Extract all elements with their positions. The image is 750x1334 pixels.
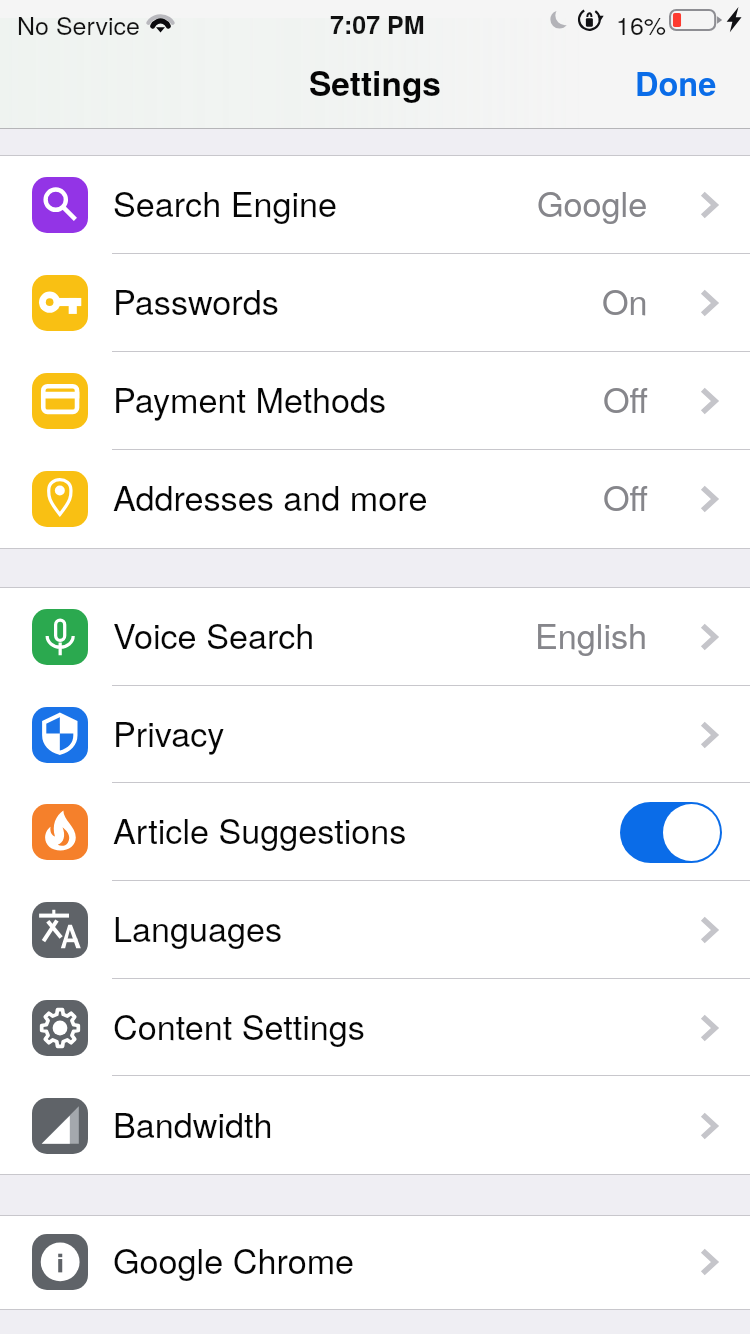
other: Passwords [700,289,718,317]
other: Search Engine [700,191,718,219]
other: Payment Methods [700,387,718,415]
staticText: Article Suggestions [113,805,407,854]
staticText: Languages [113,903,283,952]
other: Voice Search [700,623,718,651]
staticText: Voice Search [113,610,315,659]
other: Addresses and more [700,485,718,513]
staticText: 7:07 PM [330,6,425,42]
staticText: English [535,610,648,659]
other: Content Settings [700,1014,718,1042]
button[interactable]: Privacy [0,686,750,784]
staticText: Payment Methods [113,374,387,423]
staticText: 16% [616,6,667,42]
staticText: Passwords [113,276,279,325]
staticText: Off [603,472,648,521]
staticText: On [602,276,648,325]
button[interactable]: Voice Search [0,588,750,686]
staticText: Done [635,59,717,106]
button[interactable]: Bandwidth [0,1077,750,1175]
button[interactable]: Done [605,45,750,120]
other: Privacy [700,721,718,749]
button[interactable]: Addresses and more [0,450,750,548]
staticText: Search Engine [113,178,338,227]
staticText: Google Chrome [113,1235,355,1284]
staticText: No Service [17,6,141,42]
button[interactable]: Search Engine [0,156,750,254]
other: Google Chrome [700,1248,718,1276]
other: Languages [700,916,718,944]
staticText: Settings [309,58,441,106]
staticText: Addresses and more [113,472,428,521]
staticText: Off [603,374,648,423]
other: Bandwidth [700,1112,718,1140]
button[interactable]: Payment Methods [0,352,750,450]
button[interactable]: Google Chrome [0,1213,750,1311]
staticText: Bandwidth [113,1099,273,1148]
staticText: Content Settings [113,1001,365,1050]
button[interactable]: Article Suggestions toggle [620,802,722,863]
staticText: Google [537,178,648,227]
button[interactable]: Languages [0,881,750,979]
staticText: Privacy [113,708,225,757]
button[interactable]: Article Suggestions [0,783,750,881]
button[interactable]: Passwords [0,254,750,352]
button[interactable]: Content Settings [0,979,750,1077]
